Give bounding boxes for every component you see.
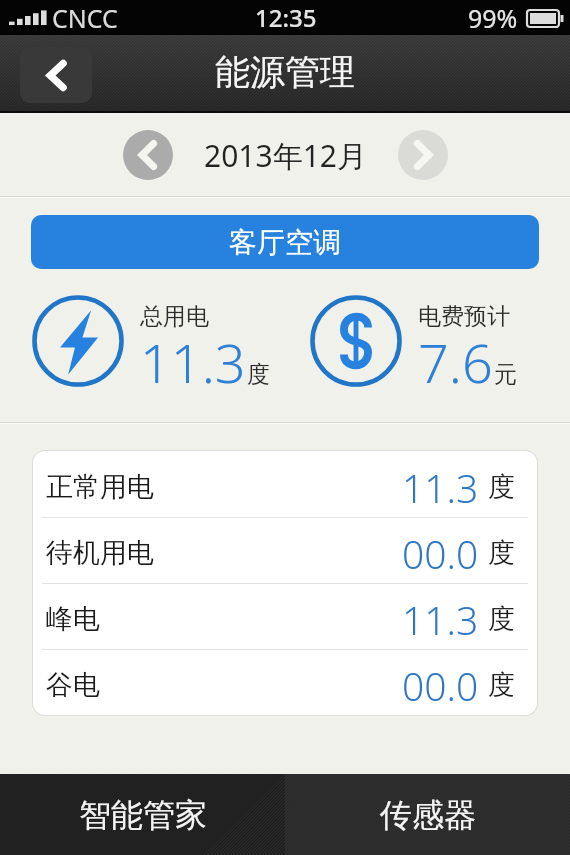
staticText: 客厅空调 — [229, 225, 341, 260]
staticText: 谷电 — [46, 668, 100, 702]
staticText: 度 — [488, 668, 515, 702]
staticText: 总用电 — [140, 302, 209, 331]
staticText: 99% — [468, 1, 518, 35]
staticText: 7.6 — [418, 325, 493, 392]
staticText: 11.3 — [402, 593, 479, 646]
staticText: 能源管理 — [215, 50, 355, 94]
button[interactable]: Previous month — [123, 130, 173, 180]
staticText: 电费预计 — [418, 302, 510, 331]
staticText: 度 — [247, 360, 270, 389]
staticText: 00.0 — [402, 527, 479, 580]
button[interactable]: Next month — [398, 130, 448, 180]
staticText: 度 — [488, 470, 515, 504]
staticText: 传感器 — [380, 795, 476, 835]
staticText: 度 — [488, 602, 515, 636]
staticText: 00.0 — [402, 659, 479, 712]
button[interactable]: 智能管家 — [0, 774, 285, 855]
button[interactable]: 待机用电 — [33, 517, 537, 583]
staticText: 度 — [488, 536, 515, 570]
staticText: 正常用电 — [46, 470, 154, 504]
button[interactable]: 正常用电 — [33, 451, 537, 517]
button[interactable]: Back — [20, 47, 92, 103]
staticText: 11.3 — [402, 461, 479, 514]
button[interactable]: 客厅空调 — [31, 215, 539, 269]
button[interactable]: 峰电 — [33, 583, 537, 649]
button[interactable]: 传感器 — [285, 774, 570, 855]
staticText: 待机用电 — [46, 536, 154, 570]
staticText: 12:35 — [255, 1, 317, 34]
button[interactable]: 谷电 — [33, 649, 537, 715]
staticText: 智能管家 — [79, 795, 207, 835]
staticText: CNCC — [52, 1, 118, 35]
staticText: 元 — [494, 360, 517, 389]
staticText: 11.3 — [140, 325, 246, 392]
staticText: 峰电 — [46, 602, 100, 636]
staticText: 2013年12月 — [204, 135, 367, 176]
